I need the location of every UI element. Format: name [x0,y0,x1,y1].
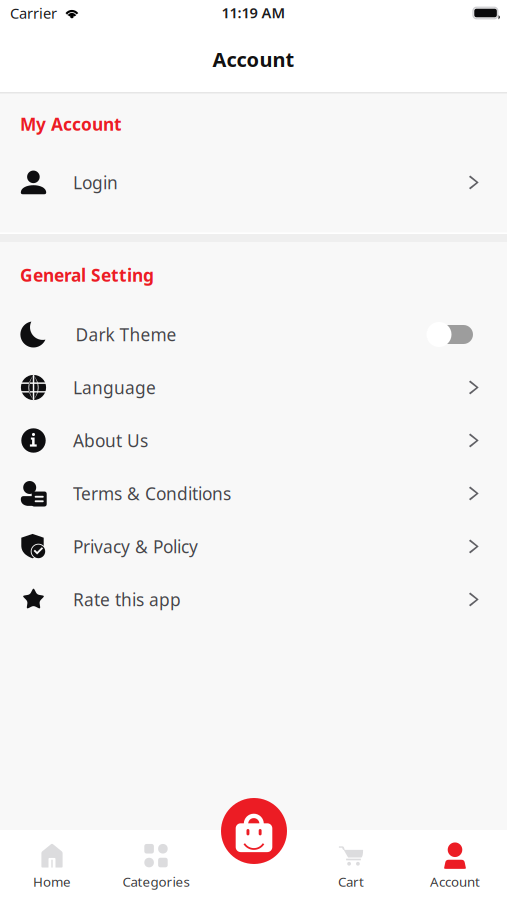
button[interactable]: Rate this app [0,573,507,626]
staticText: My Account [20,112,122,135]
staticText: Language [73,376,156,399]
button[interactable]: Privacy & Policy [0,520,507,573]
staticText: Account [212,46,294,73]
staticText: Cart [338,873,364,890]
staticText: Login [73,171,118,194]
staticText: Terms & Conditions [73,482,231,505]
staticText: About Us [73,429,148,452]
staticText: Carrier [10,3,57,23]
button[interactable]: Dark Theme [0,308,507,361]
button[interactable]: Login [0,154,507,210]
staticText: Privacy & Policy [73,535,198,558]
button[interactable]: About Us [0,414,507,467]
button[interactable]: Account [403,842,507,892]
staticText: Rate this app [73,588,181,611]
button[interactable]: Terms & Conditions [0,467,507,520]
staticText: Home [33,873,71,890]
staticText: Dark Theme [75,323,176,346]
staticText: 11:19 AM [221,3,285,22]
button[interactable]: Categories [104,842,208,892]
staticText: General Setting [20,263,154,286]
button[interactable]: Language [0,361,507,414]
button[interactable]: Home [0,842,104,892]
button[interactable]: Cart [299,842,403,892]
staticText: Account [430,873,480,890]
button[interactable]: Shop [221,798,287,864]
staticText: Categories [122,873,189,890]
